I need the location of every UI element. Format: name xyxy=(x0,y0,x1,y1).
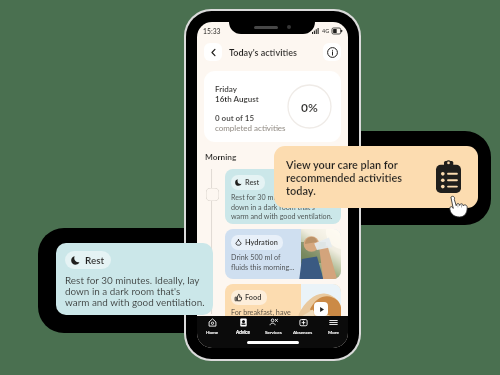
staticText: Rest xyxy=(245,178,260,187)
staticText: 0% xyxy=(301,100,318,114)
staticText: More xyxy=(328,329,339,335)
button[interactable]: More xyxy=(318,318,348,335)
staticText: Advice xyxy=(236,329,250,335)
staticText: Friday xyxy=(215,84,237,94)
staticText: Rest for 30 minutes. Ideally, lay down i… xyxy=(231,193,333,220)
button[interactable]: Absences xyxy=(288,318,318,335)
button[interactable]: Hydration xyxy=(225,229,341,279)
staticText: Rest for 30 minutes. Ideally, lay down i… xyxy=(65,274,205,308)
button[interactable]: Advice xyxy=(228,318,258,335)
staticText: Today's activities xyxy=(229,47,297,58)
button[interactable]: Services xyxy=(258,318,288,335)
button[interactable]: Play video xyxy=(314,302,328,316)
button[interactable]: Friday xyxy=(204,71,341,142)
staticText: Hydration xyxy=(245,238,278,247)
button[interactable]: Mark complete xyxy=(206,188,219,201)
staticText: completed activities xyxy=(215,123,286,133)
staticText: Home xyxy=(206,329,219,335)
staticText: Morning xyxy=(205,152,237,162)
staticText: 4G xyxy=(322,28,330,35)
staticText: 15:33 xyxy=(203,27,221,35)
staticText: 16th August xyxy=(215,94,259,104)
staticText: Rest xyxy=(85,254,105,266)
button[interactable]: Food xyxy=(225,284,341,333)
button[interactable]: Back xyxy=(204,43,222,61)
button[interactable]: Information xyxy=(323,43,341,61)
staticText: 0 out of 15 xyxy=(215,113,255,123)
button[interactable]: View your care plan for recommended acti… xyxy=(274,146,478,208)
staticText: Drink 500 ml of fluids this morning... xyxy=(231,253,295,271)
staticText: For breakfast, have xyxy=(231,308,291,317)
staticText: Food xyxy=(245,293,262,302)
button[interactable]: Rest xyxy=(56,243,213,315)
staticText: View your care plan for recommended acti… xyxy=(286,158,432,197)
staticText: Absences xyxy=(293,329,313,335)
staticText: Services xyxy=(265,329,282,335)
button[interactable]: Rest xyxy=(225,169,341,224)
button[interactable]: Home xyxy=(197,318,228,335)
